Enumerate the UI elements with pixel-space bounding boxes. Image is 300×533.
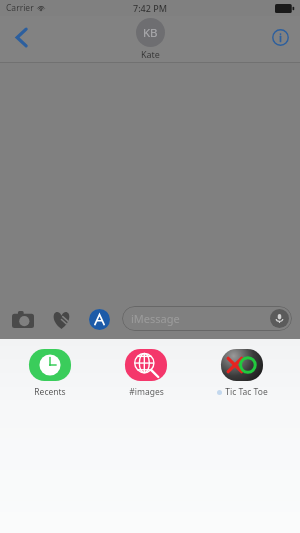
staticText: Tic Tac Toe [225,386,268,398]
button[interactable]: Dictate [270,309,289,328]
button[interactable]: Camera [8,304,38,334]
staticText: KB [143,25,158,41]
button[interactable]: #images [110,348,182,398]
staticText: Carrier [6,2,34,14]
button[interactable]: Back [4,20,38,54]
staticText: iMessage [131,311,180,326]
button[interactable]: iMessage [122,306,292,331]
staticText: #images [129,386,164,398]
button[interactable]: Digital Touch [46,304,76,334]
staticText: 7:42 PM [133,2,167,14]
button[interactable]: Tic Tac Toe [206,348,278,398]
button[interactable]: KB [136,18,165,60]
staticText: Recents [34,386,66,398]
button[interactable]: Recents [14,348,86,398]
button[interactable]: iMessage Apps [84,304,114,334]
staticText: Kate [141,48,160,60]
button[interactable]: Details [265,22,295,52]
